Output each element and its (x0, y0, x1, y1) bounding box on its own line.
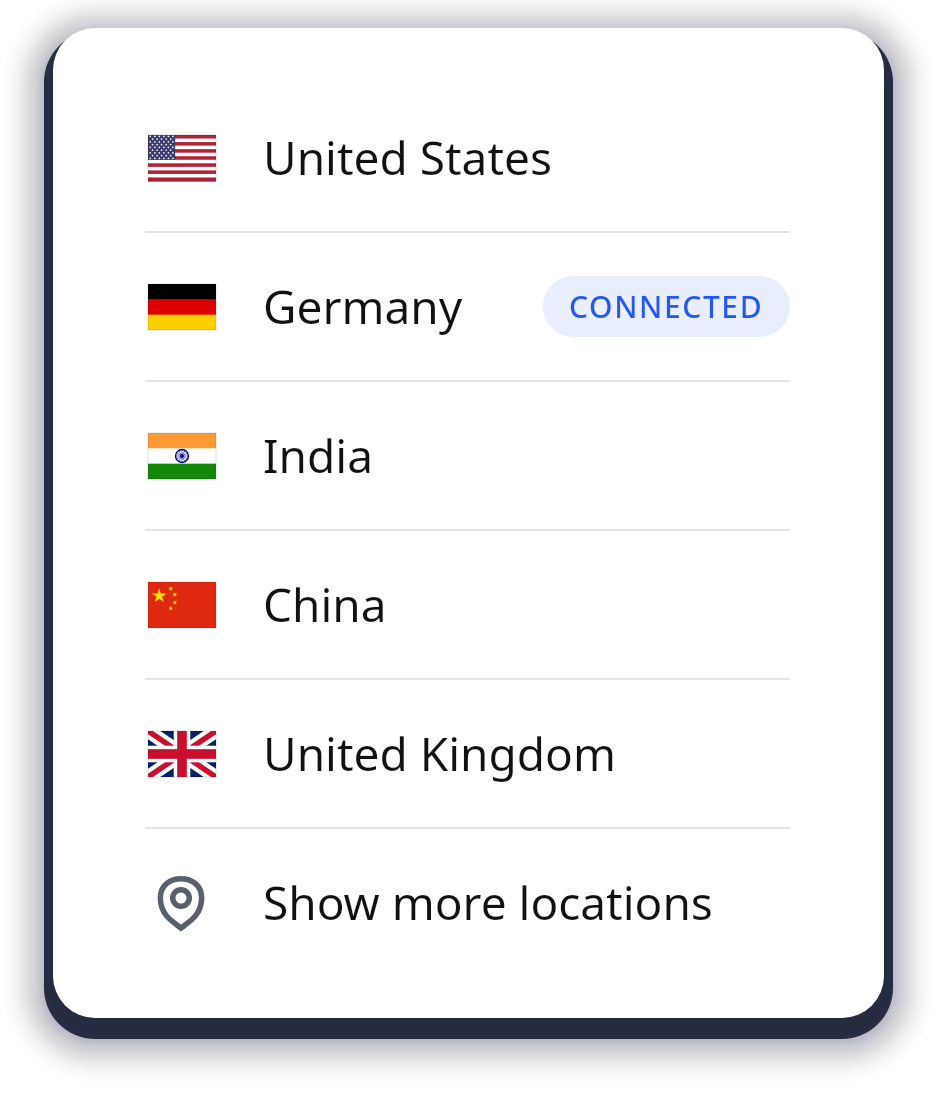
button[interactable]: CONNECTED (543, 276, 790, 337)
staticText: Show more locations (263, 871, 713, 934)
button[interactable]: China (53, 531, 884, 678)
staticText: China (263, 573, 387, 636)
button[interactable]: United States (53, 84, 884, 231)
button[interactable]: India (53, 382, 884, 529)
button[interactable]: Germany (53, 233, 884, 380)
staticText: United States (263, 126, 552, 189)
staticText: United Kingdom (263, 722, 616, 785)
staticText: Germany (263, 275, 463, 338)
staticText: CONNECTED (569, 286, 764, 327)
button[interactable]: Show more locations (53, 829, 884, 976)
staticText: India (263, 424, 373, 487)
button[interactable]: United Kingdom (53, 680, 884, 827)
